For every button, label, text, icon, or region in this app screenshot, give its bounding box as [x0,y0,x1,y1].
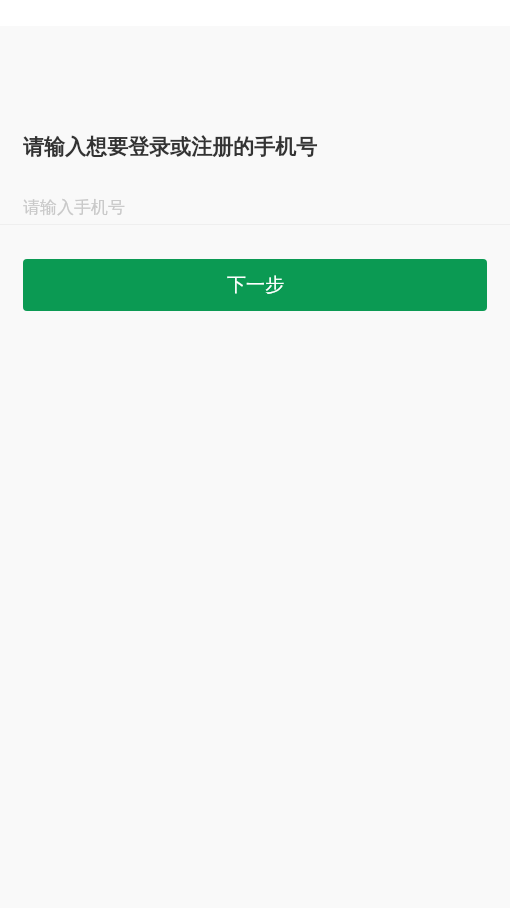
staticText: 下一步 [227,273,284,297]
button[interactable]: 请输入手机号 [0,190,510,225]
staticText: 请输入手机号 [23,197,125,218]
staticText: 请输入想要登录或注册的手机号 [23,134,317,160]
button[interactable]: 下一步 [23,259,487,311]
